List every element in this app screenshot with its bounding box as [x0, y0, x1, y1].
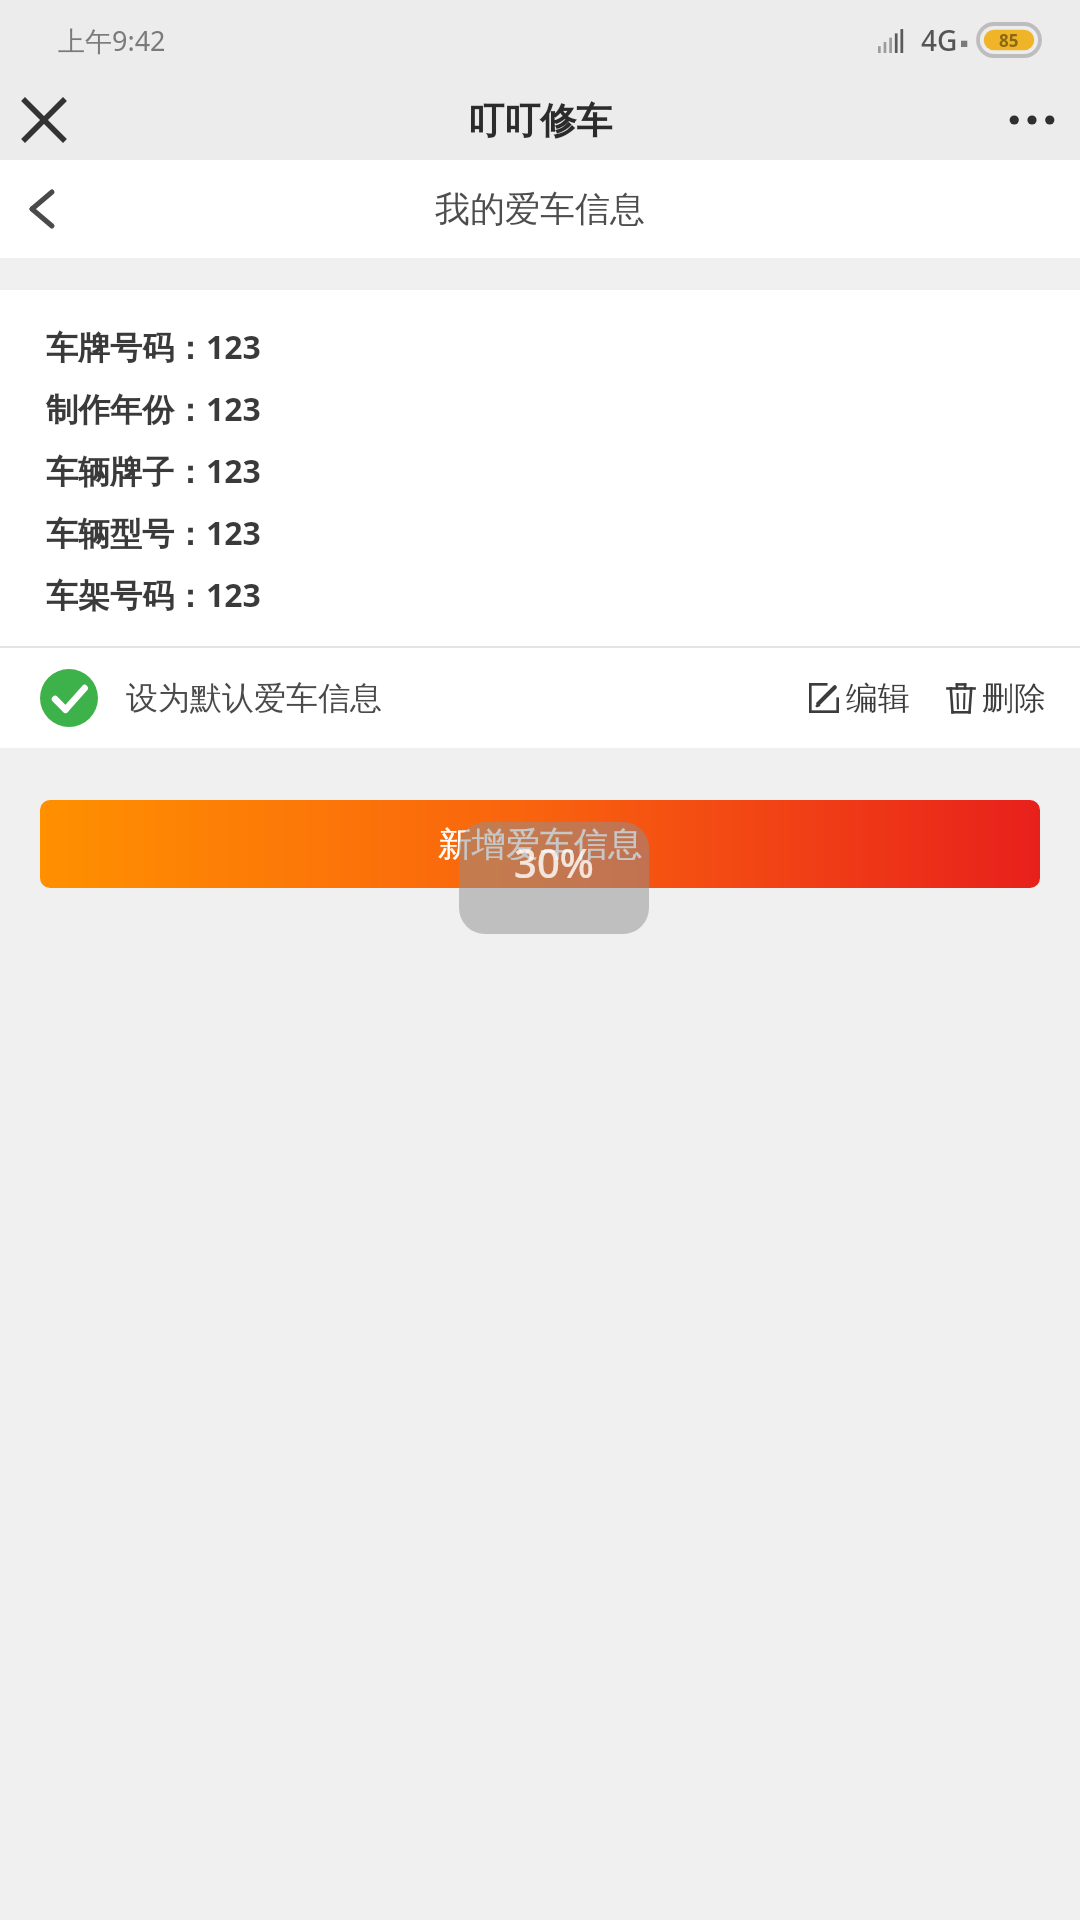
staticText: 上午9:42: [58, 22, 166, 59]
staticText: 车牌号码：123: [46, 325, 261, 369]
button[interactable]: 删除: [934, 648, 1080, 748]
button[interactable]: 新增爱车信息: [40, 800, 1040, 888]
staticText: 车架号码：123: [46, 573, 261, 617]
staticText: 制作年份：123: [46, 387, 261, 431]
button[interactable]: Close: [0, 80, 88, 160]
staticText: 车辆牌子：123: [46, 449, 261, 493]
staticText: 编辑: [846, 678, 910, 718]
staticText: 车辆型号：123: [46, 511, 261, 555]
button[interactable]: Back: [0, 167, 84, 251]
staticText: 叮叮修车: [468, 98, 612, 143]
button[interactable]: 编辑: [796, 648, 920, 748]
staticText: 设为默认爱车信息: [126, 678, 382, 718]
staticText: 删除: [982, 678, 1046, 718]
staticText: 85: [999, 29, 1019, 52]
button[interactable]: More options: [984, 80, 1080, 160]
staticText: 新增爱车信息: [438, 823, 642, 866]
button[interactable]: 设为默认爱车信息: [0, 648, 398, 748]
staticText: 4G: [921, 21, 958, 59]
staticText: 我的爱车信息: [435, 187, 645, 231]
staticText: 30%: [514, 835, 594, 889]
